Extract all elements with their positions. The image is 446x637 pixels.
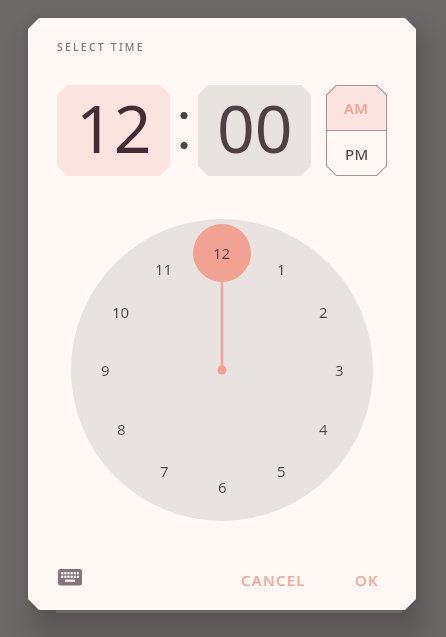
staticText: 10 <box>112 302 130 322</box>
button[interactable]: AM <box>326 85 387 130</box>
button[interactable]: CANCEL <box>231 562 315 598</box>
button[interactable]: 12 <box>57 85 170 176</box>
staticText: 5 <box>277 461 286 481</box>
staticText: 8 <box>117 419 126 439</box>
staticText: 1 <box>277 259 286 279</box>
staticText: 11 <box>155 259 173 279</box>
staticText: 6 <box>218 477 227 497</box>
button[interactable] <box>58 564 82 588</box>
staticText: OK <box>355 570 379 590</box>
staticText: 4 <box>319 419 328 439</box>
staticText: PM <box>345 144 369 164</box>
button[interactable]: 00 <box>198 85 311 176</box>
staticText: 3 <box>335 360 344 380</box>
button[interactable]: PM <box>326 131 387 176</box>
staticText: 12 <box>213 243 231 263</box>
staticText: 00 <box>217 85 293 172</box>
staticText: 9 <box>101 360 110 380</box>
staticText: 7 <box>160 461 169 481</box>
staticText: CANCEL <box>241 570 306 590</box>
button[interactable]: OK <box>335 562 399 598</box>
staticText: SELECT TIME <box>57 40 145 54</box>
staticText: AM <box>344 98 369 118</box>
staticText: 2 <box>319 302 328 322</box>
staticText: 12 <box>76 85 152 172</box>
